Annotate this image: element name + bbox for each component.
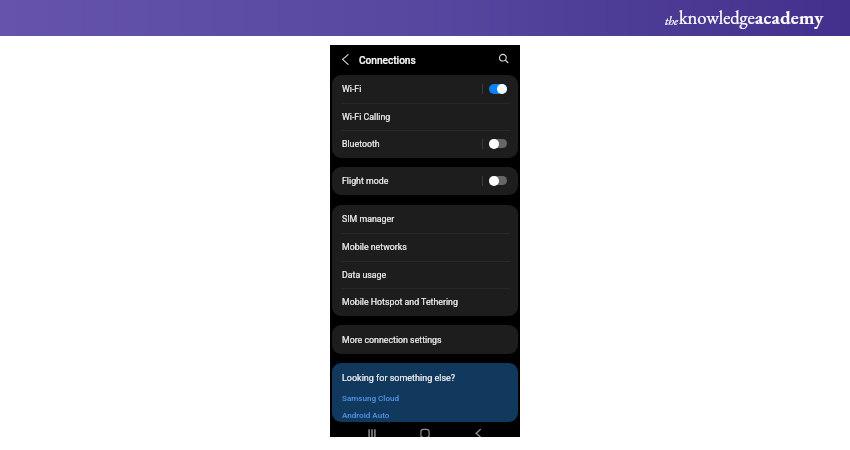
button[interactable]: More connection settings — [332, 325, 518, 354]
staticText: Mobile networks — [342, 242, 407, 252]
button[interactable]: Recent apps — [362, 421, 382, 437]
button[interactable]: Wi-Fi Calling — [332, 103, 518, 131]
button[interactable]: Navigate up — [338, 52, 354, 68]
staticText: Mobile Hotspot and Tethering — [342, 297, 458, 307]
button[interactable]: Search — [495, 50, 511, 66]
button[interactable]: Flight mode — [332, 167, 518, 195]
button[interactable]: Samsung Cloud — [332, 389, 518, 405]
staticText: Samsung Cloud — [342, 393, 400, 402]
button[interactable]: Android Auto — [332, 406, 518, 422]
staticText: Connections — [359, 55, 416, 67]
button[interactable]: Back — [468, 421, 488, 437]
staticText: Wi-Fi Calling — [342, 112, 391, 122]
staticText: Looking for something else? — [342, 373, 456, 384]
button[interactable]: Wi-Fi — [332, 75, 518, 103]
staticText: Data usage — [342, 270, 387, 280]
button[interactable]: SIM manager — [332, 205, 518, 233]
button[interactable]: Switch on — [489, 82, 508, 95]
staticText: knowledge — [679, 5, 755, 29]
button[interactable]: Switch off — [489, 174, 508, 187]
button[interactable]: Data usage — [332, 261, 518, 289]
staticText: More connection settings — [342, 335, 442, 345]
staticText: Android Auto — [342, 410, 390, 419]
staticText: the — [665, 13, 679, 29]
button[interactable]: Bluetooth — [332, 130, 518, 158]
button[interactable]: Home — [415, 421, 435, 437]
button[interactable]: Switch off — [489, 137, 508, 150]
button[interactable]: Mobile Hotspot and Tethering — [332, 288, 518, 316]
staticText: academy — [755, 4, 824, 29]
staticText: Bluetooth — [342, 139, 380, 149]
staticText: Flight mode — [342, 176, 389, 186]
staticText: Wi-Fi — [342, 84, 362, 94]
button[interactable]: Mobile networks — [332, 233, 518, 261]
staticText: SIM manager — [342, 214, 395, 224]
